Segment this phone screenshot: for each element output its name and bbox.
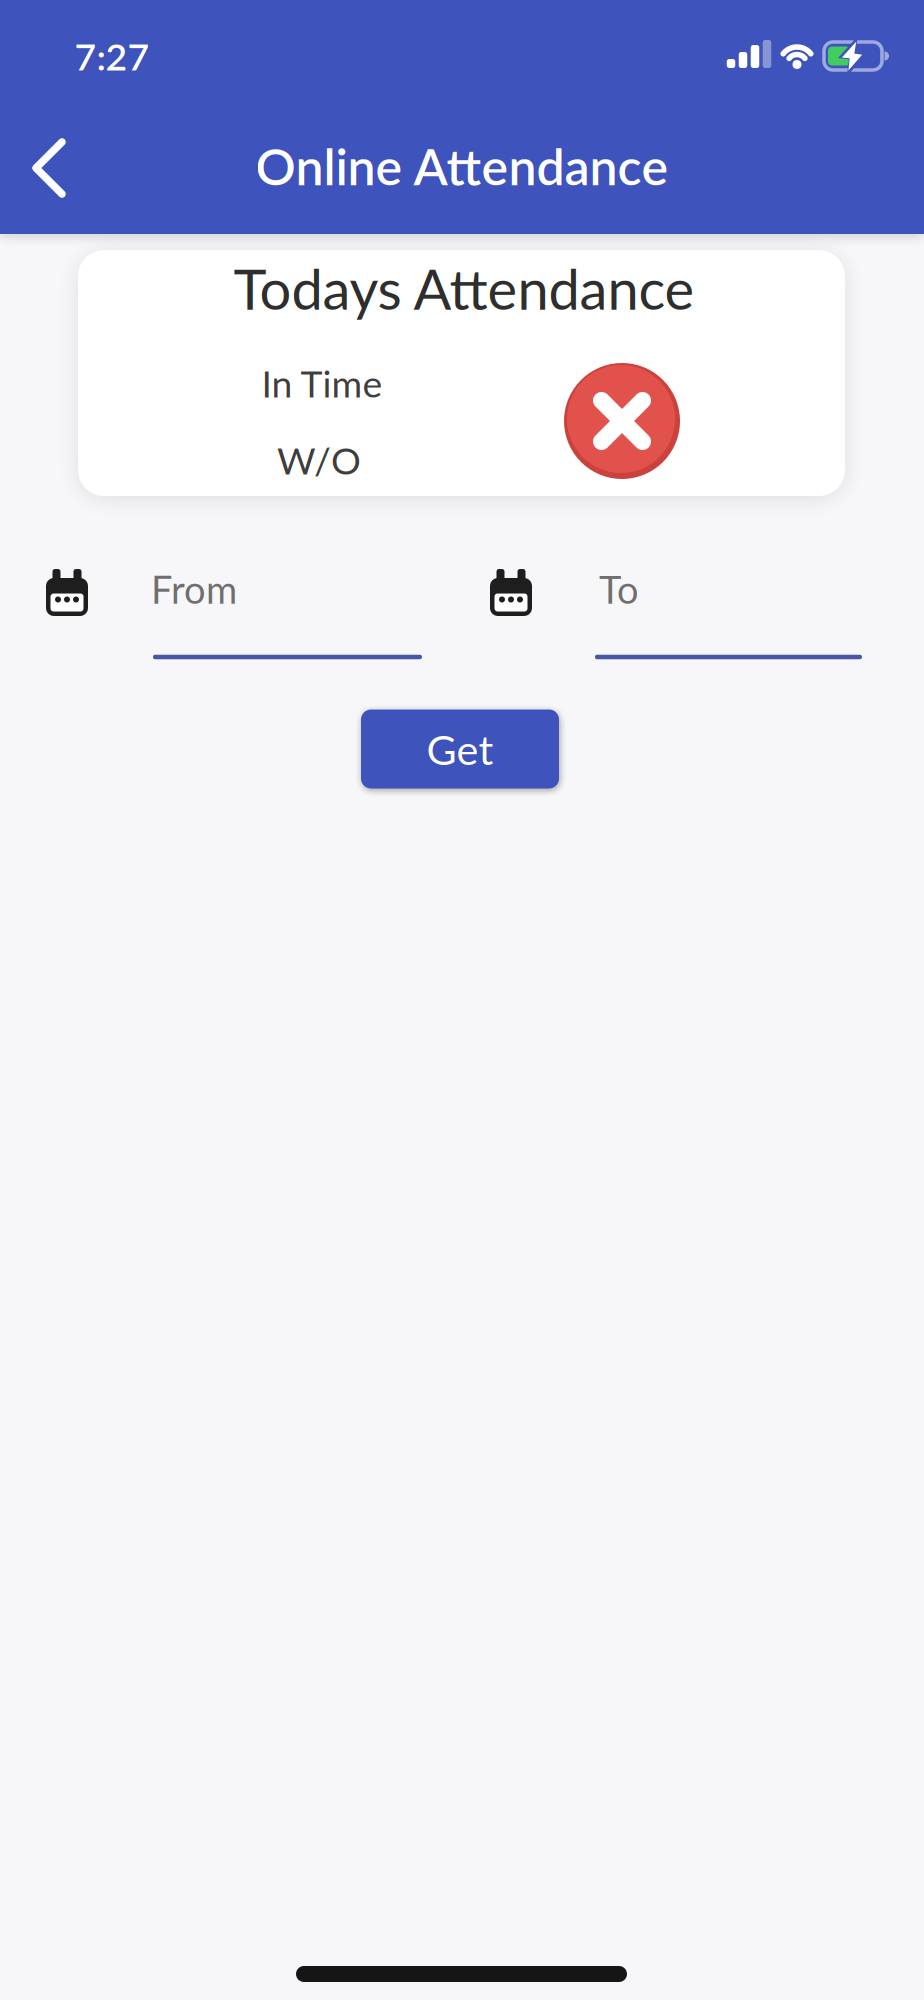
staticText: From [151, 566, 237, 612]
staticText: 7:27 [74, 34, 149, 78]
button[interactable]: Get [361, 709, 559, 788]
staticText: W/O [277, 438, 361, 482]
button[interactable]: From date [46, 570, 422, 680]
staticText: Todays Attendance [233, 254, 694, 322]
staticText: In Time [261, 361, 382, 405]
staticText: To [599, 566, 639, 612]
button[interactable]: Back [18, 133, 78, 203]
staticText: Online Attendance [255, 136, 668, 196]
staticText: Get [426, 724, 493, 774]
button[interactable]: To date [490, 570, 866, 680]
